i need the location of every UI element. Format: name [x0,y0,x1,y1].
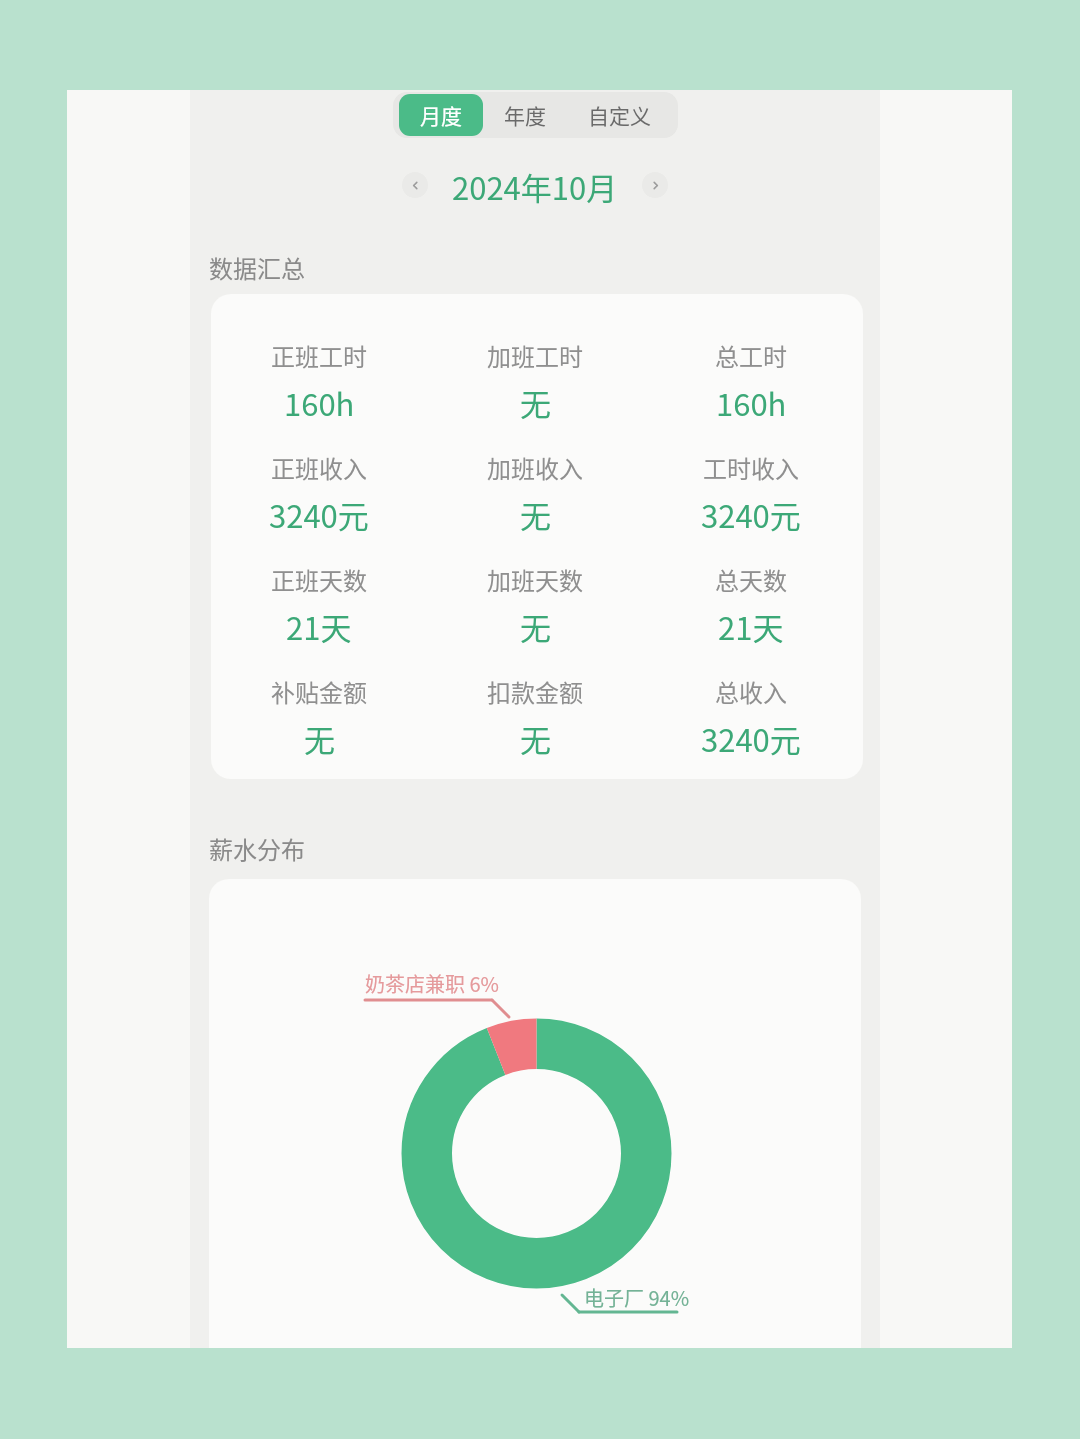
button[interactable]: 加班工时 [427,338,643,425]
staticText: 2024年10月 [452,164,618,206]
button[interactable]: Next month [642,172,668,198]
staticText: 总天数 [715,562,787,597]
staticText: 电子厂 94% [584,1283,690,1312]
button[interactable]: 月度 [399,94,483,136]
button[interactable]: 总收入 [643,674,859,761]
button[interactable]: 正班收入 [211,450,427,537]
button[interactable]: 年度 [483,94,567,136]
staticText: 无 [520,380,551,425]
staticText: 21天 [286,604,352,649]
button[interactable]: 工时收入 [643,450,859,537]
button[interactable]: 加班天数 [427,562,643,649]
staticText: 自定义 [588,100,651,130]
staticText: 正班收入 [271,450,367,485]
staticText: 无 [304,716,335,761]
staticText: 3240元 [701,716,801,761]
button[interactable]: 正班天数 [211,562,427,649]
staticText: 无 [520,716,551,761]
staticText: 数据汇总 [209,250,305,285]
staticText: 160h [716,380,787,425]
button[interactable]: 加班收入 [427,450,643,537]
staticText: 补贴金额 [271,674,367,709]
staticText: 正班工时 [271,338,367,373]
staticText: 总工时 [715,338,787,373]
staticText: 加班工时 [487,338,583,373]
staticText: 年度 [504,100,546,130]
staticText: 工时收入 [703,450,799,485]
staticText: 无 [520,492,551,537]
staticText: 扣款金额 [487,674,583,709]
button[interactable]: Previous month [402,172,428,198]
button[interactable]: 正班工时 [211,338,427,425]
staticText: 薪水分布 [209,831,305,866]
staticText: 加班天数 [487,562,583,597]
button[interactable]: 补贴金额 [211,674,427,761]
staticText: 无 [520,604,551,649]
staticText: 3240元 [269,492,369,537]
staticText: 正班天数 [271,562,367,597]
staticText: 总收入 [715,674,787,709]
staticText: 奶茶店兼职 6% [365,969,499,998]
staticText: 160h [284,380,355,425]
button[interactable]: 扣款金额 [427,674,643,761]
staticText: 加班收入 [487,450,583,485]
staticText: 3240元 [701,492,801,537]
button[interactable]: 总工时 [643,338,859,425]
staticText: 月度 [420,100,462,130]
button[interactable]: 总天数 [643,562,859,649]
staticText: 21天 [718,604,784,649]
button[interactable]: 自定义 [567,94,672,136]
